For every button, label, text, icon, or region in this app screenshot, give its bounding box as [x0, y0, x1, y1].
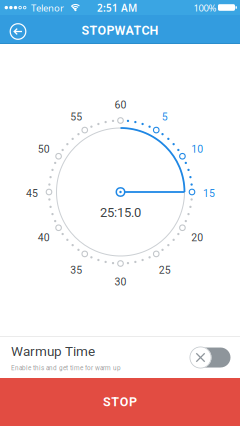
staticText: 2:51 AM: [97, 1, 137, 15]
staticText: 25: [159, 264, 171, 276]
staticText: 15: [203, 187, 215, 200]
staticText: Enable this and get time for warm up: [11, 364, 121, 372]
button[interactable]: STOP: [0, 378, 240, 426]
staticText: 30: [114, 276, 126, 288]
staticText: 45: [26, 187, 38, 200]
staticText: 60: [114, 99, 126, 111]
button[interactable]: Warmup Time: [188, 346, 230, 368]
button[interactable]: Back: [0, 15, 36, 44]
staticText: STOPWATCH: [81, 23, 158, 38]
staticText: 50: [38, 143, 50, 155]
staticText: Telenor: [31, 1, 64, 14]
staticText: 100%: [193, 1, 216, 14]
staticText: 20: [191, 232, 203, 244]
staticText: Warmup Time: [11, 343, 95, 359]
staticText: 40: [38, 232, 50, 244]
staticText: 10: [191, 143, 203, 155]
staticText: STOP: [103, 395, 137, 409]
staticText: 25:15.0: [100, 205, 141, 220]
staticText: 5: [162, 111, 168, 123]
staticText: 35: [70, 264, 82, 276]
staticText: 55: [70, 111, 82, 123]
